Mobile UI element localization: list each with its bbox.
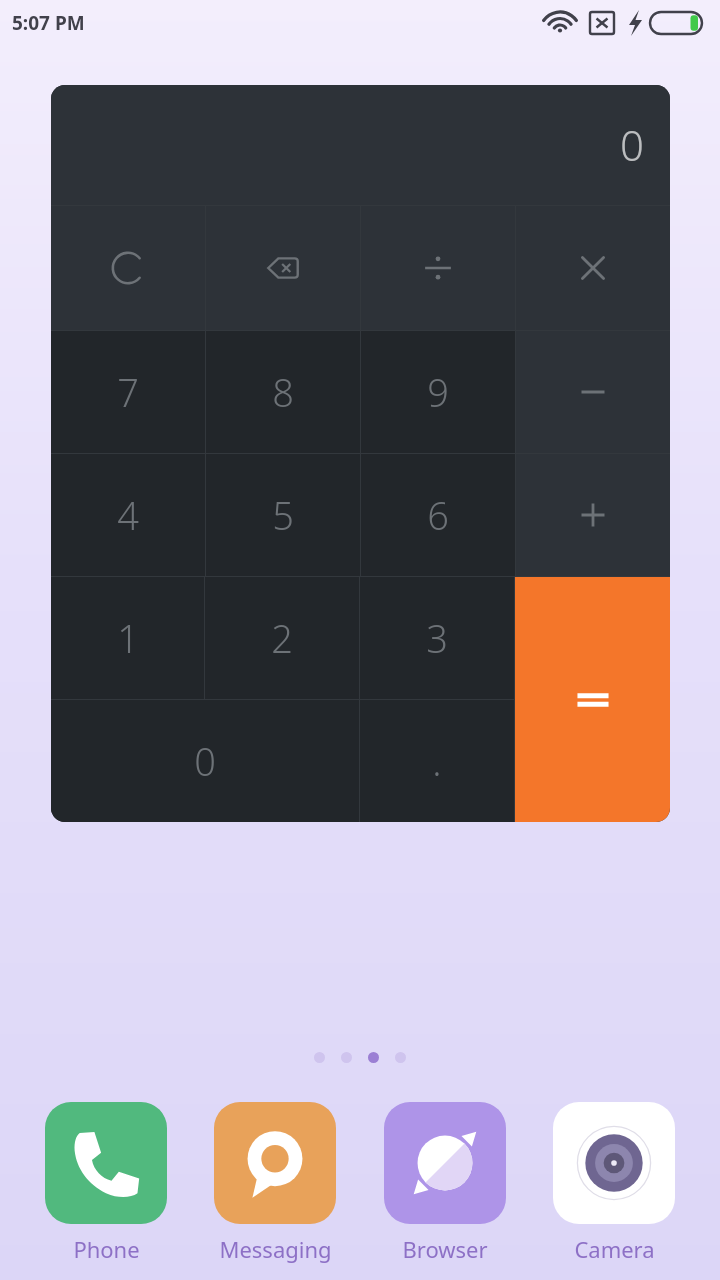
staticText: 1: [117, 612, 139, 664]
staticText: 8: [272, 366, 294, 418]
staticText: 9: [427, 366, 449, 418]
staticText: 6: [427, 489, 449, 541]
staticText: 0: [194, 735, 216, 787]
button[interactable]: 3: [360, 577, 514, 699]
staticText: 3: [426, 612, 448, 664]
staticText: 5: [272, 489, 294, 541]
button[interactable]: 4: [51, 454, 205, 576]
button[interactable]: 5: [206, 454, 360, 576]
button[interactable]: 9: [361, 331, 515, 453]
staticText: Messaging: [219, 1234, 332, 1264]
button[interactable]: Camera: [551, 1102, 677, 1264]
staticText: Camera: [574, 1234, 655, 1264]
button[interactable]: Backspace: [206, 206, 360, 330]
staticText: Phone: [73, 1234, 140, 1264]
button[interactable]: Messaging: [212, 1102, 338, 1264]
button[interactable]: Clear: [51, 206, 205, 330]
button[interactable]: Multiply: [516, 206, 670, 330]
staticText: 2: [271, 612, 293, 664]
button[interactable]: 1: [51, 577, 204, 699]
button[interactable]: Equals: [515, 577, 670, 822]
staticText: 0: [620, 116, 644, 173]
staticText: Browser: [402, 1234, 488, 1264]
button[interactable]: 2: [205, 577, 359, 699]
button[interactable]: Divide: [361, 206, 515, 330]
button[interactable]: 7: [51, 331, 205, 453]
button[interactable]: 6: [361, 454, 515, 576]
button[interactable]: 0: [51, 700, 359, 822]
staticText: 4: [117, 489, 139, 541]
button[interactable]: Browser: [382, 1102, 508, 1264]
button[interactable]: Plus: [516, 454, 670, 576]
button[interactable]: Phone: [43, 1102, 169, 1264]
staticText: 5:07 PM: [12, 10, 85, 36]
button[interactable]: Minus: [516, 331, 670, 453]
button[interactable]: 8: [206, 331, 360, 453]
staticText: 7: [117, 366, 139, 418]
staticText: .: [432, 735, 442, 787]
